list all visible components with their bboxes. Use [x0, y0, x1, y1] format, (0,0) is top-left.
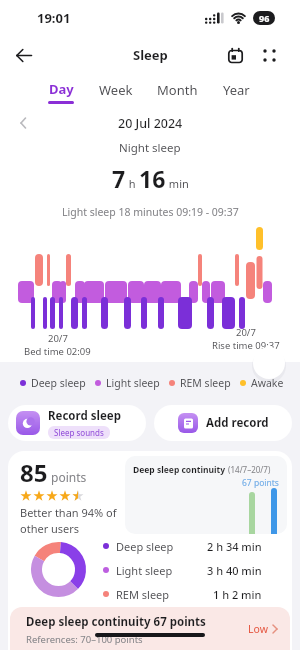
staticText: 2 h 34 min	[207, 539, 262, 554]
staticText: Low	[248, 622, 268, 636]
staticText: 1 h 2 min	[213, 587, 262, 602]
staticText: Deep sleep	[31, 376, 86, 390]
staticText: Awake	[251, 376, 284, 390]
staticText: Rise time 09:37	[212, 339, 280, 352]
staticText: Bed time 02:09	[24, 345, 91, 358]
button[interactable]	[222, 42, 248, 68]
staticText: min	[166, 176, 189, 191]
staticText: 20/7	[48, 332, 68, 345]
staticText: 67 points	[242, 477, 279, 489]
button[interactable]: Year	[223, 81, 250, 104]
button[interactable]: Month	[157, 81, 198, 104]
staticText: Deep sleep	[116, 539, 174, 554]
staticText: points	[48, 469, 87, 485]
staticText: Light sleep 18 minutes 09:19 - 09:37	[62, 205, 239, 219]
staticText: Light sleep	[116, 563, 173, 578]
staticText: 85	[20, 456, 48, 489]
staticText: h	[126, 176, 139, 191]
staticText: other users	[20, 521, 80, 534]
button[interactable]: Day	[48, 80, 74, 104]
staticText: Better than 94% of	[20, 505, 117, 520]
staticText: 19:01	[37, 9, 71, 27]
staticText: 96	[259, 12, 270, 24]
button[interactable]: Week	[99, 81, 133, 104]
staticText: (14/7–20/7)	[226, 464, 271, 475]
staticText: 16	[139, 163, 166, 194]
staticText: 20/7	[236, 326, 256, 339]
button[interactable]: Add record	[154, 405, 292, 441]
button[interactable]	[253, 347, 285, 379]
staticText: Day	[49, 80, 74, 98]
staticText: Record sleep	[48, 408, 121, 424]
button[interactable]: Deep sleep continuity 67 points	[10, 607, 290, 650]
staticText: Add record	[206, 415, 269, 431]
staticText: Light sleep	[106, 376, 160, 390]
button[interactable]	[256, 42, 282, 68]
button[interactable]: Record sleep	[8, 405, 146, 441]
staticText: 3 h 40 min	[207, 563, 262, 578]
staticText: References: 70–100 points	[26, 633, 143, 646]
staticText: Night sleep	[119, 140, 181, 156]
staticText: Sleep	[133, 46, 168, 64]
staticText: Deep sleep continuity 67 points	[26, 614, 206, 630]
staticText: REM sleep	[180, 376, 231, 390]
button[interactable]: 20 Jul 2024	[118, 115, 183, 132]
button[interactable]	[8, 39, 40, 71]
staticText: 7	[112, 163, 126, 194]
staticText: Sleep sounds	[54, 427, 104, 438]
staticText: REM sleep	[116, 587, 170, 602]
staticText: Deep sleep continuity	[133, 464, 226, 476]
